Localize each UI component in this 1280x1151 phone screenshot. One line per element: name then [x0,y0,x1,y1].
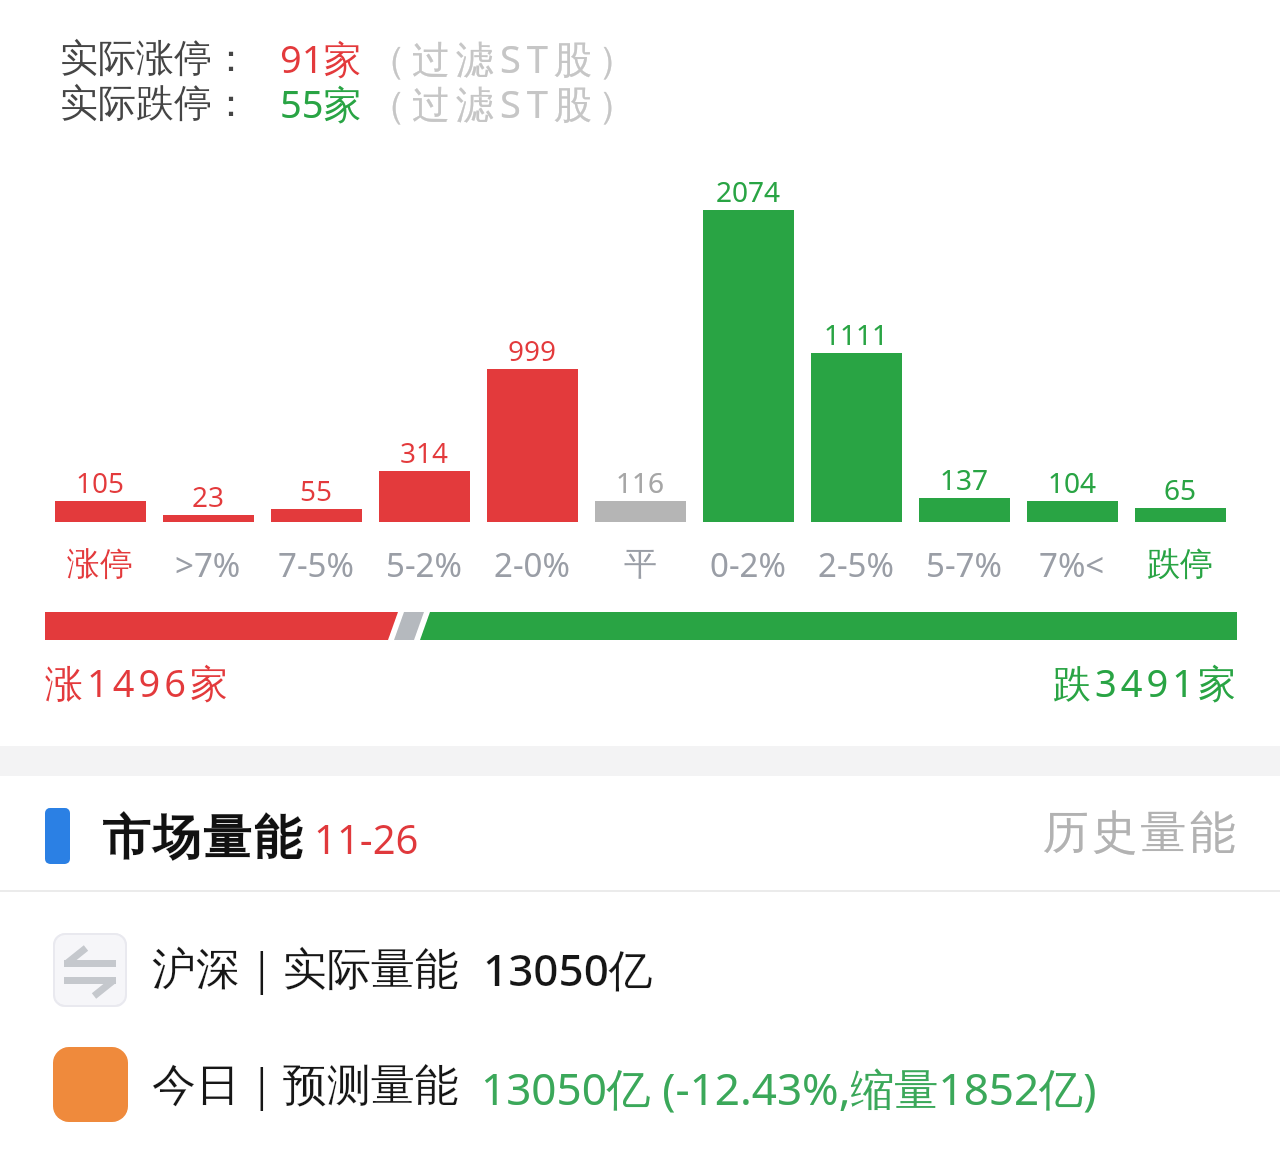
staticText: 105 [76,463,125,501]
staticText: 11-26 [314,811,419,865]
staticText: >7% [175,542,241,587]
staticText: 市场量能 [101,808,303,868]
staticText: 历史量能 [1041,804,1237,862]
staticText: 0-2% [710,542,786,587]
staticText: 平 [624,543,657,585]
staticText: 7-5% [278,542,354,587]
staticText: 涨1496家 [45,656,232,708]
staticText: 实际跌停： [60,79,250,127]
staticText: 55 [300,471,333,509]
staticText: 跌3491家 [1053,656,1240,708]
staticText: 涨停 [67,543,133,585]
staticText: 跌停 [1147,543,1213,585]
staticText: 104 [1048,463,1097,501]
staticText: 13050亿 [483,939,653,999]
staticText: 今日｜预测量能 [152,1058,460,1113]
staticText: （过滤ST股） [368,32,642,84]
staticText: 5-2% [386,542,462,587]
staticText: 7%< [1039,542,1105,587]
staticText: （过滤ST股） [368,77,642,129]
staticText: 1111 [824,315,889,353]
staticText: 999 [508,331,557,369]
staticText: 116 [616,463,665,501]
button[interactable] [0,1040,1280,1130]
button[interactable]: 历史量能 [1041,804,1237,862]
staticText: 23 [192,477,225,515]
staticText: 91家 [280,32,362,84]
staticText: 沪深｜实际量能 [152,942,460,997]
staticText: 65 [1164,470,1197,508]
staticText: 实际涨停： [60,34,250,82]
staticText: 137 [940,460,989,498]
staticText: 2-0% [494,542,570,587]
staticText: 55家 [280,77,362,129]
staticText: 314 [400,433,449,471]
staticText: 13050亿 (-12.43%,缩量1852亿) [481,1058,1097,1118]
staticText: 2074 [716,172,781,210]
staticText: 5-7% [926,542,1002,587]
staticText: 2-5% [818,542,894,587]
button[interactable] [0,925,1280,1015]
